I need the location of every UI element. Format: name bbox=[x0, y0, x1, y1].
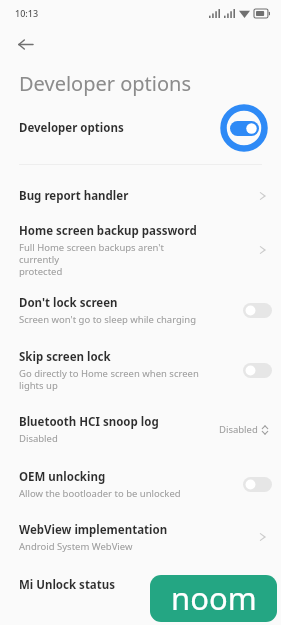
staticText: Disabled bbox=[219, 423, 258, 436]
staticText: Developer options bbox=[19, 120, 124, 136]
staticText: Home screen backup password bbox=[19, 223, 197, 239]
staticText: noom bbox=[171, 577, 257, 619]
button[interactable]: Bluetooth HCI snoop log bbox=[0, 402, 281, 457]
staticText: Bluetooth HCI snoop log bbox=[19, 414, 159, 430]
staticText: Disabled bbox=[19, 432, 58, 445]
button[interactable]: Developer options bbox=[0, 104, 281, 152]
button[interactable]: Mi Unlock status bbox=[0, 562, 281, 608]
button[interactable]: WebView implementation bbox=[0, 512, 281, 562]
staticText: Bug report handler bbox=[19, 188, 129, 204]
staticText: Mi Unlock status bbox=[19, 577, 116, 593]
button[interactable]: Back bbox=[10, 29, 40, 59]
button[interactable]: Don't lock screen bbox=[0, 282, 281, 338]
button[interactable]: Bug report handler bbox=[0, 174, 281, 218]
staticText: Full Home screen backups aren't currentl… bbox=[19, 241, 206, 278]
staticText: Developer options bbox=[19, 70, 192, 97]
button[interactable]: OEM unlocking bbox=[0, 457, 281, 512]
button[interactable]: Skip screen lock bbox=[0, 338, 281, 402]
staticText: Allow the bootloader to be unlocked bbox=[19, 487, 181, 500]
staticText: 10:13 bbox=[15, 7, 39, 19]
staticText: Don't lock screen bbox=[19, 295, 118, 311]
staticText: OEM unlocking bbox=[19, 469, 106, 485]
staticText: Skip screen lock bbox=[19, 349, 111, 365]
staticText: Android System WebView bbox=[19, 540, 133, 553]
staticText: Go directly to Home screen when screen l… bbox=[19, 367, 199, 392]
staticText: Screen won't go to sleep while charging bbox=[19, 313, 196, 326]
button[interactable]: Home screen backup password bbox=[0, 218, 281, 282]
staticText: WebView implementation bbox=[19, 522, 168, 538]
